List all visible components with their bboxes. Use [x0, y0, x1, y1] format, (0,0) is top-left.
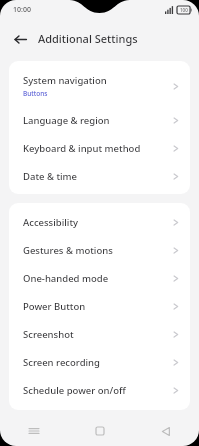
button[interactable]: Back [133, 416, 199, 446]
button[interactable]: Screenshot [9, 320, 190, 348]
button[interactable]: Back [8, 27, 32, 51]
staticText: 10:00 [13, 5, 31, 15]
staticText: 100 [180, 7, 188, 13]
button[interactable]: Language & region [9, 106, 190, 134]
staticText: Schedule power on/off [23, 384, 126, 397]
button[interactable]: Power Button [9, 292, 190, 320]
staticText: Language & region [23, 114, 110, 127]
staticText: Additional Settings [38, 31, 138, 46]
button[interactable]: Date & time [9, 162, 190, 190]
staticText: One-handed mode [23, 272, 109, 285]
staticText: Date & time [23, 170, 78, 183]
button[interactable]: Screen recording [9, 348, 190, 376]
staticText: Keyboard & input method [23, 142, 141, 155]
button[interactable]: System navigation [9, 66, 190, 106]
button[interactable]: Keyboard & input method [9, 134, 190, 162]
staticText: System navigation [23, 74, 107, 87]
staticText: Gestures & motions [23, 244, 113, 257]
button[interactable]: Home [67, 416, 133, 446]
staticText: Buttons [23, 89, 48, 98]
staticText: Power Button [23, 300, 86, 313]
staticText: Screenshot [23, 328, 74, 341]
button[interactable]: Schedule power on/off [9, 376, 190, 404]
button[interactable]: Accessibility [9, 208, 190, 236]
button[interactable]: One-handed mode [9, 264, 190, 292]
staticText: Accessibility [23, 216, 79, 229]
button[interactable]: Recent apps [0, 416, 67, 446]
staticText: Screen recording [23, 356, 100, 369]
button[interactable]: Gestures & motions [9, 236, 190, 264]
